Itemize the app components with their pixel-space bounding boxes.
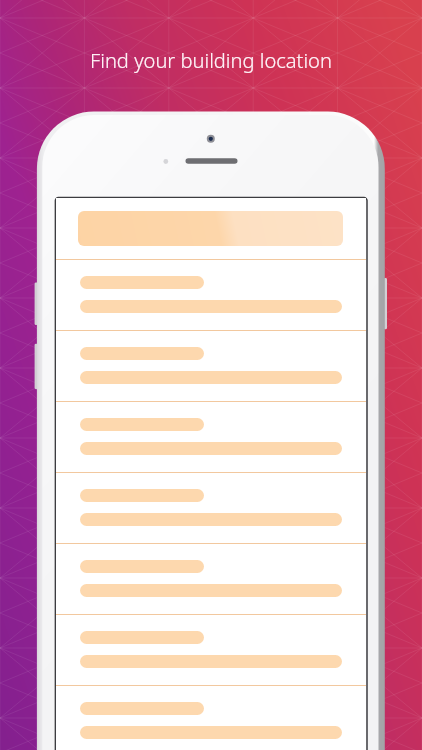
- button[interactable]: [56, 260, 366, 330]
- button[interactable]: [56, 686, 366, 750]
- button[interactable]: [56, 198, 366, 259]
- button[interactable]: [56, 544, 366, 614]
- button[interactable]: [56, 402, 366, 472]
- staticText: Find your building location: [0, 47, 422, 74]
- button[interactable]: [56, 615, 366, 685]
- button[interactable]: [56, 331, 366, 401]
- button[interactable]: [56, 473, 366, 543]
